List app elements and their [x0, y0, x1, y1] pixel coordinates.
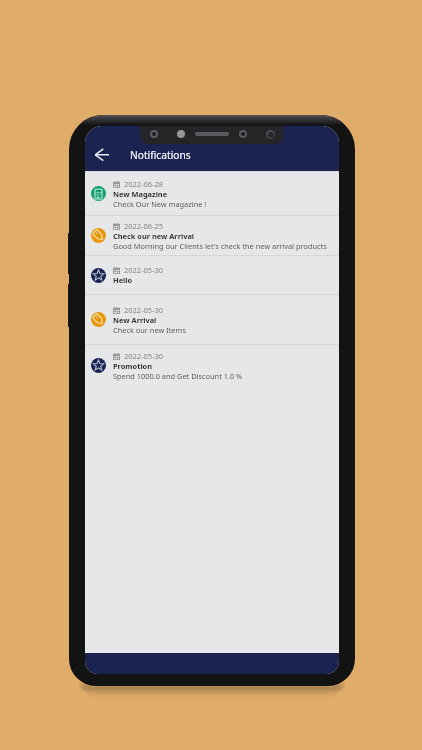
button[interactable]: Back [88, 143, 112, 167]
staticText: 2022-06-28 [124, 179, 164, 189]
button[interactable]: 2022-05-30 [85, 295, 339, 344]
staticText: New Arrival [113, 315, 157, 325]
staticText: 2022-05-30 [124, 265, 164, 275]
staticText: 2022-05-30 [124, 351, 164, 361]
staticText: Spend 1000.0 and Get Discount 1.0 % [113, 371, 243, 381]
staticText: Hello [113, 275, 133, 285]
button[interactable]: 2022-06-25 [85, 216, 339, 255]
button[interactable]: 2022-06-28 [85, 172, 339, 215]
staticText: 2022-05-30 [124, 305, 164, 315]
staticText: New Magazine [113, 189, 168, 199]
button[interactable]: 2022-05-30 [85, 345, 339, 386]
staticText: Promotion [113, 361, 153, 371]
staticText: Good Morning our Clients let's check the… [113, 241, 327, 251]
staticText: Check our new Items [113, 325, 186, 335]
button[interactable]: 2022-05-30 [85, 256, 339, 294]
staticText: Check Our New magazine ! [113, 199, 207, 209]
staticText: 2022-06-25 [124, 221, 164, 231]
staticText: Check our new Arrival [113, 231, 195, 241]
staticText: Notifications [130, 148, 191, 162]
